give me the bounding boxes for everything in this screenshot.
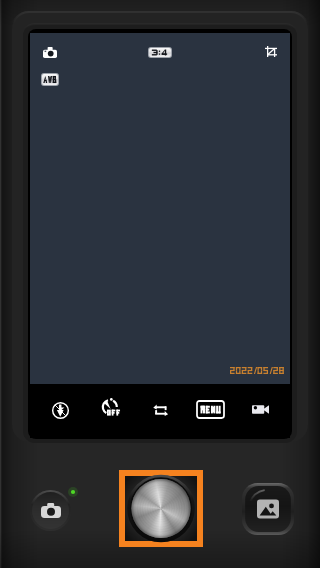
- button[interactable]: [197, 401, 224, 418]
- button[interactable]: Flash off: [52, 402, 69, 419]
- button[interactable]: Switch camera: [151, 401, 170, 420]
- button[interactable]: Gallery: [242, 483, 294, 535]
- button[interactable]: Video mode: [252, 403, 269, 416]
- button[interactable]: Shutter: [119, 470, 203, 547]
- button[interactable]: Camera mode: [30, 490, 71, 531]
- button[interactable]: Self timer off: [101, 399, 121, 419]
